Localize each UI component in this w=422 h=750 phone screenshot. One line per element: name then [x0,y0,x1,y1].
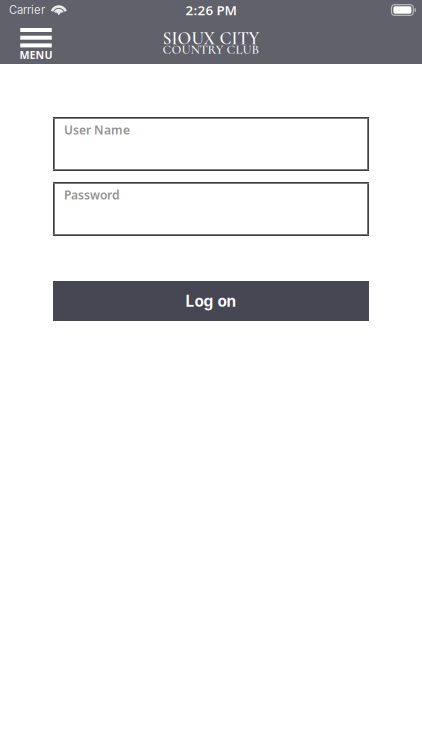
staticText: Carrier [9,3,45,17]
staticText: Log on [185,292,236,310]
staticText: Password [64,187,120,203]
button[interactable]: Log on [53,281,369,321]
staticText: 2:26 PM [185,1,236,19]
staticText: SIOUX CITY [162,28,259,49]
staticText: COUNTRY CLUB [162,42,259,58]
staticText: User Name [64,122,130,138]
button[interactable]: Menu [19,20,53,64]
staticText: MENU [19,48,52,62]
